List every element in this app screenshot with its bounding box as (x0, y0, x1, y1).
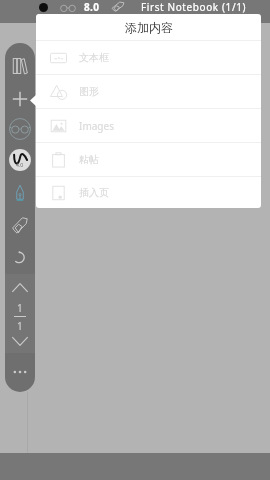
button[interactable]: Eraser (5, 116, 35, 142)
button[interactable]: Stroke width 4.0 (5, 147, 35, 173)
button[interactable]: Undo (5, 244, 35, 270)
staticText: Images (79, 119, 114, 133)
button[interactable]: Add content (5, 86, 35, 112)
button[interactable]: More options (5, 359, 35, 385)
staticText: 8.0 (84, 0, 100, 14)
button[interactable]: Next page (5, 328, 35, 354)
staticText: 4.0 (16, 162, 24, 169)
staticText: 1 (17, 301, 23, 315)
staticText: 插入页 (79, 186, 109, 199)
button[interactable]: 插入页 (36, 177, 261, 208)
button[interactable]: 图形 (36, 75, 261, 108)
button[interactable]: Highlighter (5, 212, 35, 238)
staticText: 粘帖 (79, 153, 99, 166)
button[interactable]: 粘帖 (36, 143, 261, 176)
staticText: 添加内容 (125, 20, 173, 35)
button[interactable]: Images (36, 109, 261, 142)
staticText: 文本框 (79, 51, 109, 64)
staticText: 图形 (79, 85, 99, 98)
staticText: First Notebook (1/1) (141, 0, 247, 14)
button[interactable]: Previous page (5, 275, 35, 301)
button[interactable]: Pen (5, 180, 35, 206)
button[interactable]: Notebooks (5, 53, 35, 79)
button[interactable]: 文本框 (36, 41, 261, 74)
staticText: 1 (17, 319, 23, 333)
